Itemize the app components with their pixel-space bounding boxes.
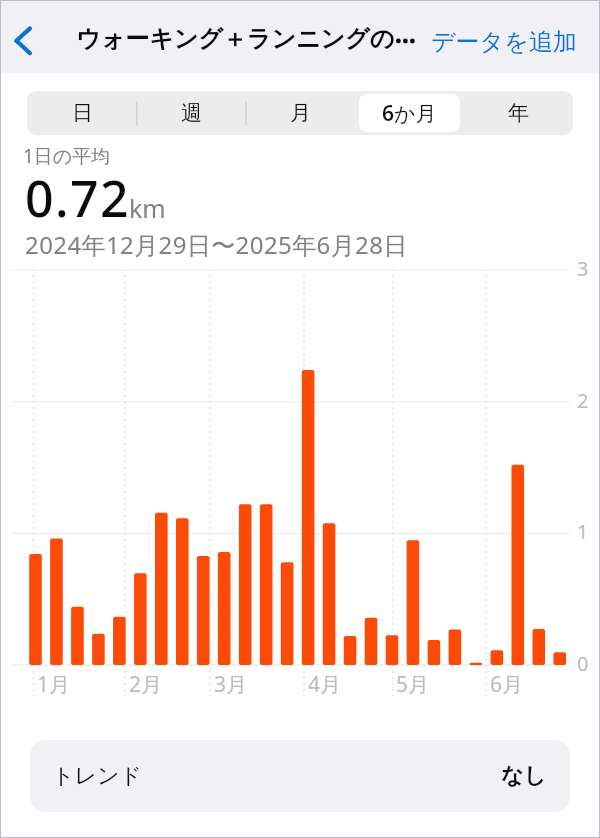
- staticText: データを追加: [431, 27, 577, 57]
- staticText: 6月: [490, 670, 524, 699]
- staticText: 2: [577, 387, 589, 414]
- staticText: 2月: [129, 670, 163, 699]
- staticText: 3月: [214, 670, 248, 699]
- staticText: km: [129, 191, 166, 225]
- staticText: 年: [508, 100, 529, 126]
- button[interactable]: データを追加: [423, 22, 585, 62]
- button[interactable]: 日: [27, 91, 137, 135]
- staticText: 月: [290, 100, 311, 126]
- staticText: なし: [501, 762, 547, 790]
- staticText: 2024年12月29日〜2025年6月28日: [25, 228, 408, 261]
- staticText: 1日の平均: [23, 143, 111, 169]
- button[interactable]: 6か月: [355, 91, 464, 135]
- button[interactable]: トレンド: [30, 740, 570, 812]
- staticText: 3: [577, 255, 589, 282]
- staticText: 6か月: [382, 99, 437, 128]
- staticText: 日: [72, 100, 93, 126]
- button[interactable]: 週: [137, 91, 246, 135]
- button[interactable]: 月: [246, 91, 355, 135]
- staticText: 0: [577, 650, 589, 677]
- staticText: 1: [577, 518, 589, 545]
- button[interactable]: 戻る: [0, 17, 44, 61]
- button[interactable]: 年: [464, 91, 573, 135]
- staticText: 1月: [37, 670, 71, 699]
- staticText: トレンド: [52, 762, 143, 790]
- staticText: 4月: [308, 670, 342, 699]
- staticText: ウォーキング＋ランニングの: [76, 24, 395, 54]
- staticText: 5月: [396, 670, 430, 699]
- staticText: 0.72: [25, 164, 130, 232]
- staticText: 週: [181, 100, 202, 126]
